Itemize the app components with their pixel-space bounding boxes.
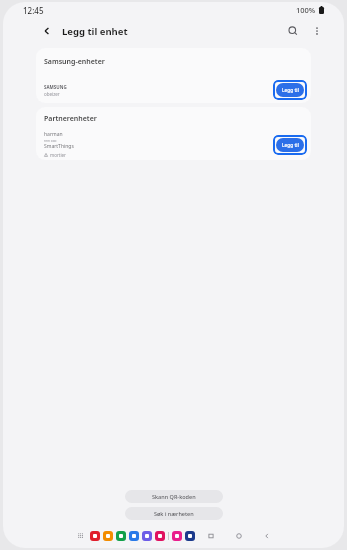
button[interactable]: Legg til	[276, 138, 304, 152]
button[interactable]: Search	[284, 22, 302, 40]
staticText: Legg til	[282, 87, 299, 94]
button[interactable]: App	[103, 531, 113, 541]
button[interactable]: Legg til	[276, 83, 304, 97]
staticText: Søk i nærheten	[154, 510, 194, 517]
staticText: SAMSUNG	[44, 84, 67, 90]
staticText: Samsung-enheter	[44, 57, 105, 67]
button[interactable]: Home	[233, 530, 245, 542]
button[interactable]: Søk i nærheten	[125, 507, 223, 520]
staticText: nnn ooo	[44, 139, 57, 143]
button[interactable]: Back	[261, 530, 273, 542]
button[interactable]: More options	[308, 22, 326, 40]
button[interactable]: App	[90, 531, 100, 541]
staticText: obeizer	[44, 91, 60, 97]
button[interactable]: All apps	[75, 530, 87, 542]
button[interactable]: App	[155, 531, 165, 541]
staticText: Legg til	[282, 142, 299, 149]
staticText: Partnerenheter	[44, 114, 97, 124]
button[interactable]: App	[142, 531, 152, 541]
staticText: 12:45	[23, 5, 44, 16]
staticText: harman	[44, 131, 63, 138]
staticText: 100%	[296, 5, 316, 15]
button[interactable]: App	[185, 531, 195, 541]
button[interactable]: App	[129, 531, 139, 541]
staticText: Legg til enhet	[62, 25, 128, 38]
button[interactable]: App	[172, 531, 182, 541]
button[interactable]: App	[116, 531, 126, 541]
staticText: Skann QR-koden	[152, 493, 196, 500]
staticText: SmartThings	[44, 143, 74, 150]
button[interactable]: Skann QR-koden	[125, 490, 223, 503]
staticText: mortier	[50, 152, 66, 158]
button[interactable]: Recents	[205, 530, 217, 542]
button[interactable]: Back	[39, 23, 55, 39]
